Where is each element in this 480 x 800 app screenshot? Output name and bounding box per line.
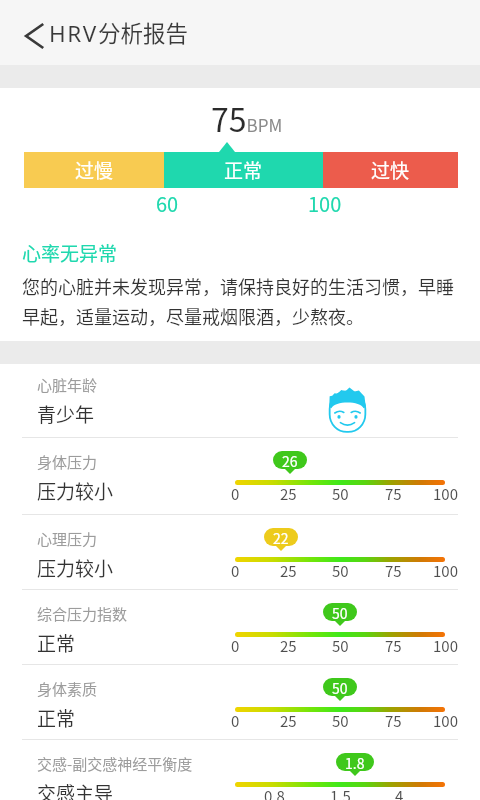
button[interactable]: 身体素质 bbox=[0, 665, 480, 739]
staticText: 1.5 bbox=[330, 785, 351, 800]
staticText: 50 bbox=[332, 603, 348, 621]
staticText: 25 bbox=[280, 483, 297, 505]
staticText: 您的心脏并未发现异常，请保持良好的生活习惯，早睡早起，适量运动，尽量戒烟限酒，少… bbox=[22, 273, 460, 329]
staticText: 25 bbox=[280, 710, 297, 732]
staticText: 0 bbox=[231, 710, 240, 732]
staticText: 4 bbox=[395, 785, 404, 800]
staticText: 心率无异常 bbox=[22, 239, 118, 267]
staticText: 25 bbox=[280, 635, 297, 657]
staticText: 0 bbox=[231, 635, 240, 657]
button[interactable]: 心理压力 bbox=[0, 515, 480, 589]
staticText: 过慢 bbox=[75, 156, 114, 184]
staticText: 75BPM bbox=[211, 95, 283, 141]
staticText: 50 bbox=[332, 678, 348, 696]
staticText: 心脏年龄 bbox=[37, 374, 98, 396]
staticText: 25 bbox=[280, 560, 297, 582]
staticText: 1.8 bbox=[345, 753, 365, 771]
staticText: 50 bbox=[332, 560, 349, 582]
button[interactable]: 身体压力 bbox=[0, 438, 480, 514]
button[interactable]: 交感-副交感神经平衡度 bbox=[0, 740, 480, 800]
button[interactable]: 过慢 bbox=[24, 152, 164, 188]
staticText: 压力较小 bbox=[37, 477, 114, 505]
staticText: 0 bbox=[231, 560, 240, 582]
staticText: 正常 bbox=[37, 629, 76, 657]
staticText: 75 bbox=[385, 635, 402, 657]
staticText: 0 bbox=[231, 483, 240, 505]
button[interactable]: 综合压力指数 bbox=[0, 590, 480, 664]
staticText: 75 bbox=[385, 483, 402, 505]
button[interactable]: 正常 bbox=[164, 152, 323, 188]
staticText: 身体压力 bbox=[37, 451, 98, 473]
staticText: 身体素质 bbox=[37, 678, 98, 700]
button[interactable]: 心脏年龄 bbox=[0, 364, 480, 437]
staticText: 50 bbox=[332, 483, 349, 505]
staticText: 50 bbox=[332, 710, 349, 732]
staticText: 75 bbox=[385, 560, 402, 582]
staticText: 100 bbox=[433, 635, 458, 657]
staticText: HRV分析报告 bbox=[49, 16, 188, 49]
button[interactable]: 过快 bbox=[323, 152, 458, 188]
staticText: 综合压力指数 bbox=[37, 603, 128, 625]
staticText: 60 bbox=[156, 189, 179, 218]
staticText: 100 bbox=[433, 710, 458, 732]
staticText: 100 bbox=[308, 189, 342, 218]
staticText: 100 bbox=[433, 560, 458, 582]
staticText: 75 bbox=[385, 710, 402, 732]
staticText: 青少年 bbox=[37, 400, 95, 428]
staticText: 26 bbox=[282, 451, 298, 469]
staticText: 交感主导 bbox=[37, 779, 114, 800]
staticText: 50 bbox=[332, 635, 349, 657]
staticText: 心理压力 bbox=[37, 528, 98, 550]
staticText: 100 bbox=[433, 483, 458, 505]
staticText: 交感-副交感神经平衡度 bbox=[37, 753, 193, 775]
staticText: 压力较小 bbox=[37, 554, 114, 582]
staticText: 正常 bbox=[37, 704, 76, 732]
button[interactable]: Back bbox=[0, 0, 49, 65]
staticText: 正常 bbox=[224, 156, 263, 184]
staticText: 过快 bbox=[371, 156, 410, 184]
staticText: 22 bbox=[273, 528, 289, 546]
staticText: 0.8 bbox=[264, 785, 285, 800]
